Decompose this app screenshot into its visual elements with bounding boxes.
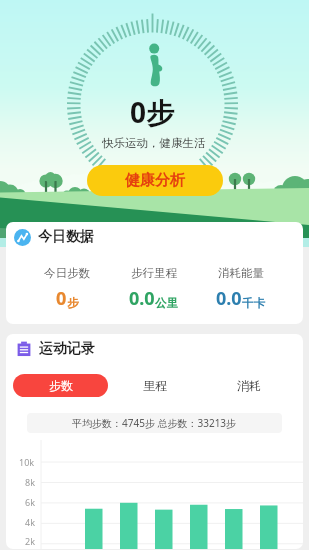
staticText: 平均步数：4745步 总步数：33213步	[72, 416, 237, 430]
staticText: 6k	[25, 496, 35, 508]
staticText: 8k	[25, 476, 35, 488]
staticText: 10k	[19, 456, 35, 468]
staticText: 千卡	[242, 296, 265, 310]
staticText: 快乐运动，健康生活	[102, 136, 206, 150]
staticText: 2k	[25, 535, 35, 547]
staticText: 步	[67, 296, 79, 310]
staticText: 运动记录	[39, 340, 95, 358]
button[interactable]: 里程	[108, 374, 202, 397]
staticText: 消耗能量	[218, 266, 264, 280]
staticText: 0.0	[216, 286, 242, 311]
staticText: 4k	[25, 516, 35, 528]
staticText: 步行里程	[131, 266, 177, 280]
staticText: 今日数据	[38, 228, 94, 246]
staticText: 0步	[130, 93, 175, 131]
staticText: 里程	[143, 378, 167, 393]
staticText: 公里	[155, 296, 178, 310]
staticText: 消耗	[237, 378, 261, 393]
staticText: 健康分析	[125, 171, 185, 190]
staticText: 步数	[49, 378, 73, 393]
button[interactable]: 步数	[13, 374, 108, 397]
button[interactable]: 消耗	[202, 374, 296, 397]
button[interactable]: 健康分析	[87, 165, 223, 196]
staticText: 0.0	[129, 286, 155, 311]
staticText: 今日步数	[44, 266, 90, 280]
staticText: 0	[56, 286, 67, 311]
